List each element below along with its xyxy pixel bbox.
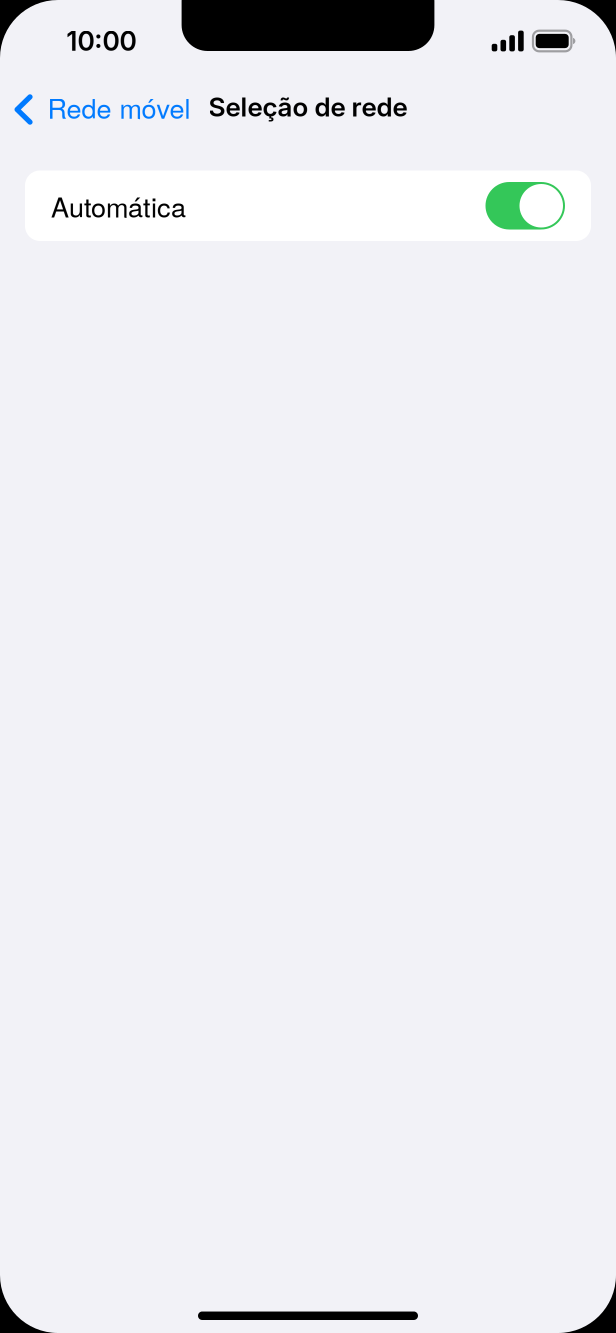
staticText: Rede móvel <box>47 88 190 126</box>
button[interactable]: Automática <box>25 170 591 241</box>
staticText: 10:00 <box>66 25 136 57</box>
button[interactable]: Rede móvel <box>0 82 202 132</box>
staticText: Automática <box>51 186 186 225</box>
staticText: Seleção de rede <box>208 91 407 123</box>
